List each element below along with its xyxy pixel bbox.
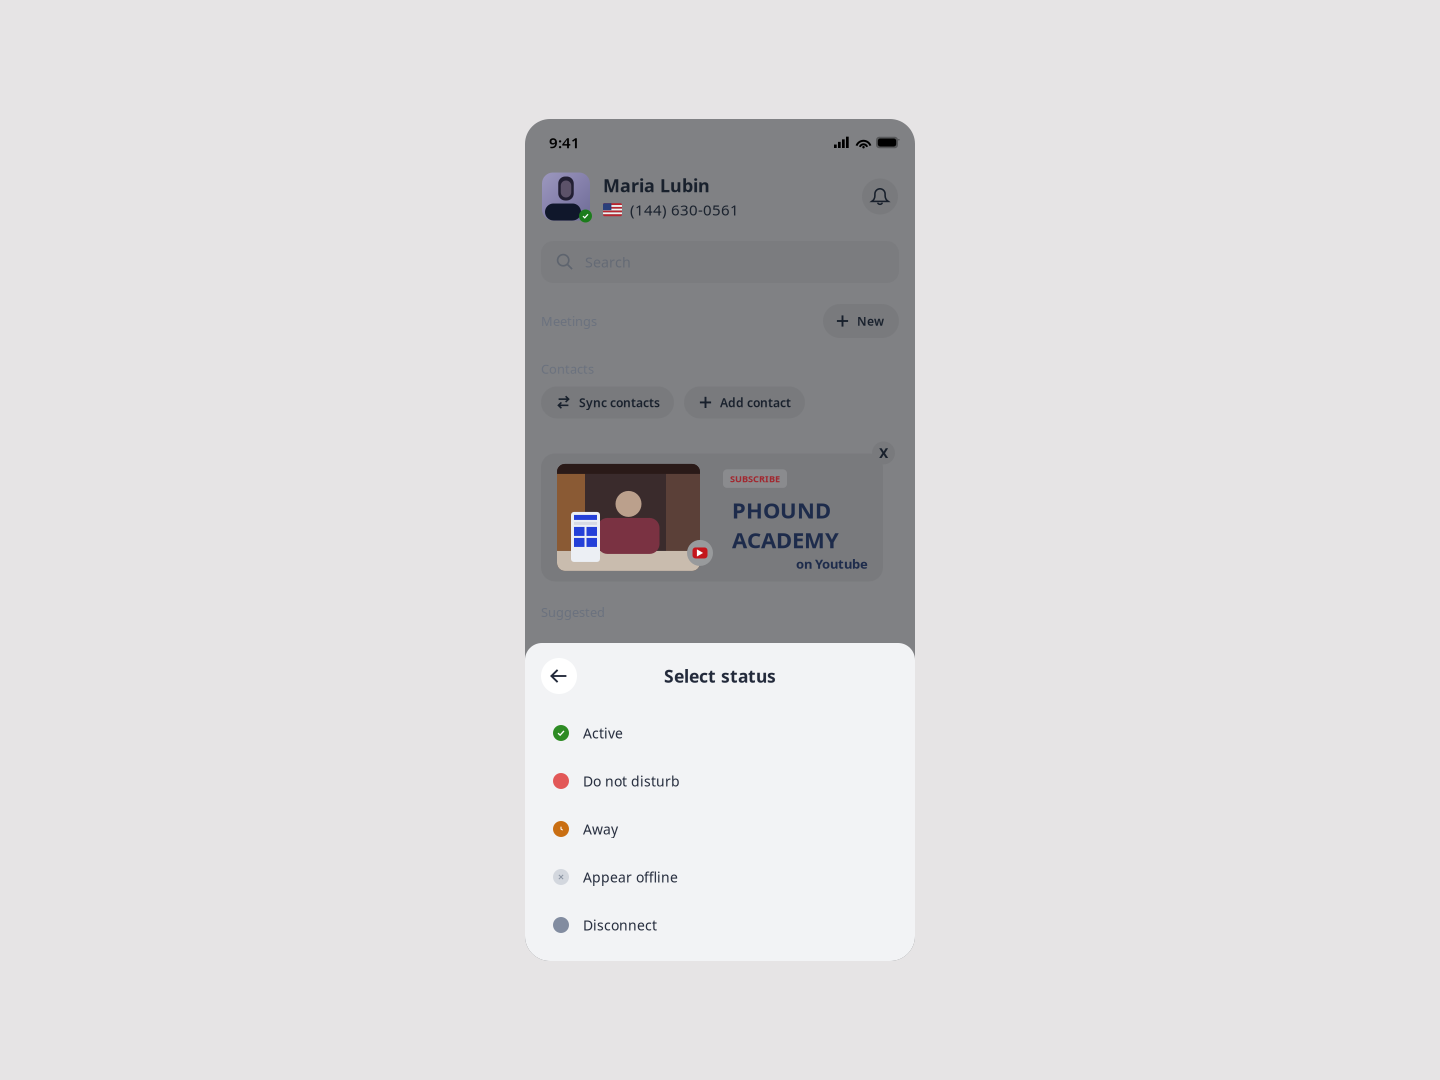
staticText: Disconnect: [583, 915, 657, 934]
staticText: Select status: [664, 664, 776, 688]
button[interactable]: New: [823, 304, 899, 338]
staticText: SUBSCRIBE: [730, 472, 780, 485]
button[interactable]: Disconnect: [525, 901, 915, 949]
button[interactable]: Away: [525, 805, 915, 853]
button[interactable]: Sync contacts: [541, 386, 674, 418]
staticText: 9:41: [549, 132, 580, 153]
staticText: PHOUND: [732, 495, 831, 525]
staticText: Contacts: [541, 360, 594, 377]
button[interactable]: Do not disturb: [525, 757, 915, 805]
button[interactable]: Add contact: [684, 386, 805, 418]
button[interactable]: Appear offline: [525, 853, 915, 901]
button[interactable]: Back: [541, 658, 577, 694]
staticText: Active: [583, 723, 623, 742]
staticText: Add contact: [720, 394, 791, 411]
staticText: Meetings: [541, 312, 597, 330]
button[interactable]: Dismiss ad: [872, 441, 895, 464]
staticText: Sync contacts: [579, 394, 660, 411]
staticText: Appear offline: [583, 867, 678, 886]
staticText: New: [857, 313, 884, 329]
button[interactable]: Active: [525, 709, 915, 757]
staticText: Suggested: [541, 603, 605, 621]
staticText: ACADEMY: [732, 525, 839, 555]
staticText: Do not disturb: [583, 771, 680, 790]
staticText: Maria Lubin: [603, 173, 710, 197]
staticText: (144) 630-0561: [630, 199, 739, 220]
button[interactable]: Notifications: [862, 178, 898, 214]
staticText: Search: [585, 252, 631, 272]
staticText: on Youtube: [796, 555, 868, 572]
staticText: Away: [583, 819, 618, 838]
staticText: X: [879, 443, 888, 462]
